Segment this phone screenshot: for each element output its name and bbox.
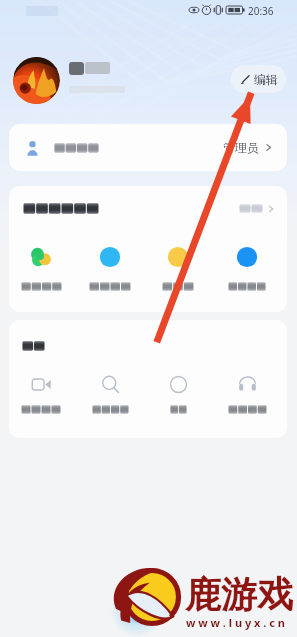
button[interactable]: Search bbox=[81, 374, 139, 418]
button[interactable]: Support bbox=[218, 374, 276, 418]
button[interactable]: 管理员 bbox=[9, 124, 287, 171]
staticText: w w w . l u y x . c n bbox=[186, 615, 285, 630]
staticText: 编辑 bbox=[254, 72, 278, 87]
button[interactable]: 编辑 bbox=[231, 65, 286, 93]
button[interactable] bbox=[149, 243, 207, 291]
button[interactable] bbox=[12, 243, 70, 291]
button[interactable]: Profile photo bbox=[13, 57, 60, 104]
button[interactable] bbox=[218, 243, 276, 291]
staticText: 20:36 bbox=[248, 4, 274, 18]
button[interactable] bbox=[81, 243, 139, 291]
staticText: 鹿游戏 bbox=[185, 572, 293, 617]
staticText: 管理员 bbox=[223, 140, 259, 155]
button[interactable]: More bbox=[149, 374, 207, 418]
button[interactable]: Video bbox=[12, 374, 70, 418]
